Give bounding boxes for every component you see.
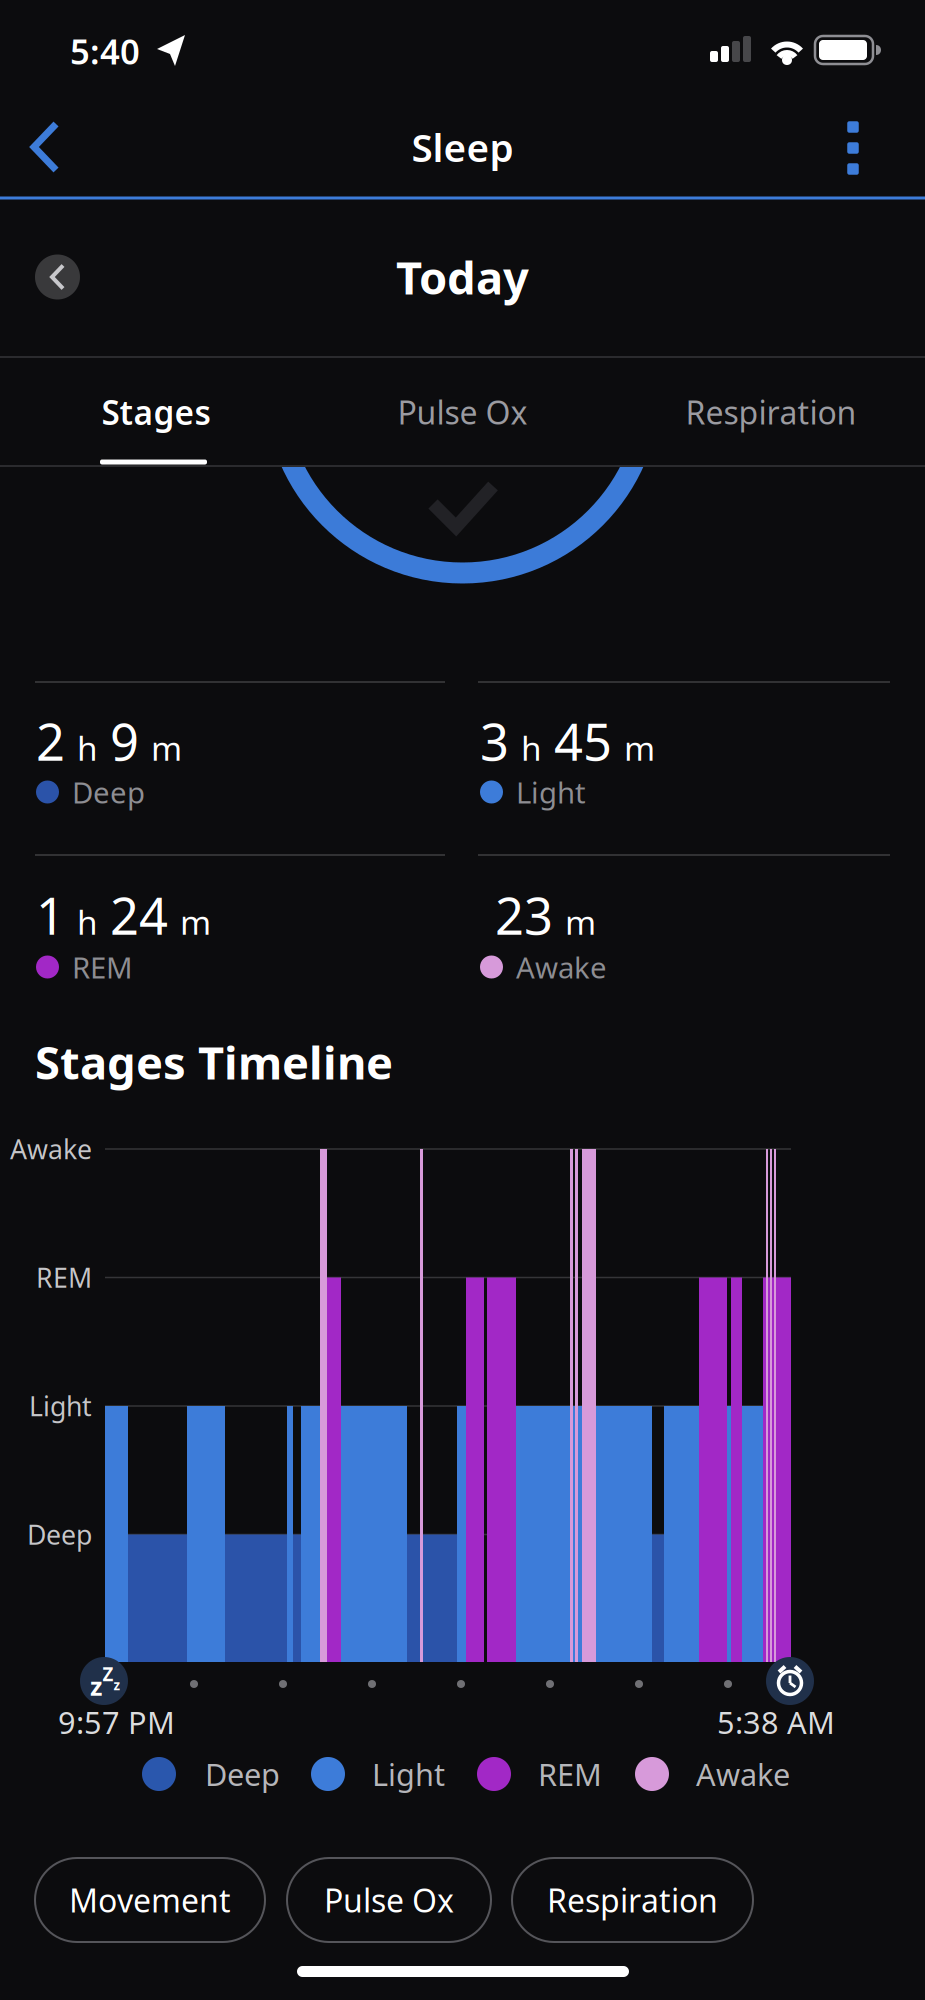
staticText: REM: [72, 947, 133, 986]
button[interactable]: Pulse Ox: [312, 362, 612, 462]
staticText: Awake: [10, 1131, 92, 1167]
staticText: z: [113, 1676, 120, 1694]
staticText: REM: [538, 1754, 602, 1794]
staticText: Light: [372, 1754, 445, 1794]
staticText: h: [521, 726, 542, 770]
staticText: Awake: [516, 947, 607, 986]
staticText: m: [180, 900, 211, 944]
staticText: 5:38 AM: [717, 1702, 835, 1742]
staticText: Sleep: [411, 121, 513, 173]
button[interactable]: [823, 113, 883, 183]
staticText: Awake: [696, 1754, 790, 1794]
staticText: Z: [102, 1662, 113, 1686]
staticText: m: [151, 726, 182, 770]
staticText: h: [77, 900, 98, 944]
staticText: m: [624, 726, 655, 770]
staticText: h: [77, 726, 98, 770]
staticText: 2: [36, 707, 65, 775]
staticText: Deep: [205, 1754, 280, 1794]
staticText: Movement: [69, 1879, 231, 1921]
button[interactable]: Movement: [35, 1858, 265, 1942]
staticText: 1: [36, 881, 65, 949]
staticText: 9: [110, 707, 139, 775]
button[interactable]: [35, 254, 80, 299]
staticText: REM: [36, 1260, 92, 1295]
button[interactable]: Stages: [6, 362, 306, 462]
staticText: Deep: [27, 1517, 92, 1552]
staticText: 24: [110, 881, 168, 949]
staticText: Pulse Ox: [324, 1879, 454, 1921]
staticText: Pulse Ox: [397, 391, 527, 433]
button[interactable]: [15, 112, 75, 182]
staticText: Light: [29, 1388, 92, 1424]
button[interactable]: Respiration: [512, 1858, 753, 1942]
button[interactable]: Respiration: [621, 362, 921, 462]
staticText: Respiration: [547, 1879, 718, 1921]
button[interactable]: Pulse Ox: [287, 1858, 491, 1942]
staticText: Stages: [101, 390, 210, 434]
staticText: 9:57 PM: [58, 1702, 175, 1742]
staticText: 23: [495, 881, 553, 949]
staticText: z: [90, 1669, 102, 1703]
staticText: 45: [554, 707, 612, 775]
staticText: 3: [480, 707, 509, 775]
staticText: Light: [516, 772, 586, 811]
staticText: m: [565, 900, 596, 944]
staticText: Respiration: [685, 391, 856, 433]
staticText: Today: [396, 247, 529, 307]
staticText: 5:40: [70, 28, 140, 74]
staticText: Deep: [72, 772, 145, 811]
staticText: Stages Timeline: [35, 1032, 393, 1092]
